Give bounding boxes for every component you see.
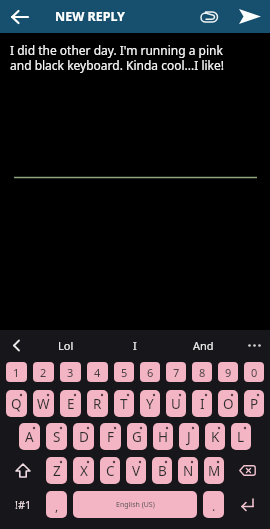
staticText: 0	[251, 365, 258, 380]
staticText: And	[193, 338, 214, 353]
button[interactable]: 9	[218, 362, 238, 382]
staticText: F	[107, 428, 115, 446]
staticText: T	[120, 395, 128, 413]
staticText: H	[158, 428, 169, 446]
button[interactable]: D	[73, 423, 94, 450]
button[interactable]: 6	[140, 362, 160, 382]
button[interactable]: C	[100, 457, 120, 484]
staticText: V	[132, 462, 141, 480]
staticText: A	[25, 428, 34, 446]
button[interactable]: 0	[244, 362, 264, 382]
button[interactable]: T	[114, 390, 134, 417]
button[interactable]	[227, 457, 267, 484]
staticText: I	[200, 395, 205, 413]
button[interactable]: Q	[6, 390, 27, 417]
staticText: D	[79, 428, 89, 446]
button[interactable]: 7	[166, 362, 186, 382]
button[interactable]: V	[126, 457, 146, 484]
button[interactable]: E	[60, 390, 81, 417]
button[interactable]: L	[231, 423, 251, 450]
button[interactable]: And	[178, 330, 228, 360]
button[interactable]: Z	[46, 457, 67, 484]
button[interactable]: K	[205, 423, 225, 450]
staticText: 2	[40, 365, 47, 380]
staticText: 1	[13, 365, 20, 380]
button[interactable]: A	[19, 423, 40, 450]
staticText: 6	[147, 365, 154, 380]
button[interactable]: I	[110, 330, 160, 360]
staticText: 5	[121, 365, 128, 380]
staticText: Q	[11, 395, 22, 413]
button[interactable]: J	[179, 423, 199, 450]
staticText: E	[67, 395, 75, 413]
button[interactable]: B	[152, 457, 172, 484]
button[interactable]: M	[204, 457, 224, 484]
staticText: Z	[53, 462, 61, 480]
staticText: M	[208, 462, 221, 480]
staticText: R	[93, 395, 102, 413]
staticText: L	[237, 428, 245, 446]
button[interactable]: 2	[33, 362, 54, 382]
staticText: N	[183, 462, 194, 480]
staticText: !#1	[15, 497, 32, 512]
button[interactable]: X	[73, 457, 94, 484]
button[interactable]: P	[244, 390, 264, 417]
staticText: 4	[94, 365, 101, 380]
button[interactable]	[192, 0, 226, 33]
staticText: English (US)	[116, 500, 155, 510]
staticText: Lol	[58, 338, 74, 353]
button[interactable]: 5	[114, 362, 134, 382]
button[interactable]: G	[127, 423, 147, 450]
staticText: .	[212, 498, 216, 514]
staticText: J	[187, 428, 191, 446]
staticText: U	[171, 395, 181, 413]
staticText: O	[223, 395, 234, 413]
button[interactable]: 8	[192, 362, 212, 382]
staticText: K	[211, 428, 220, 446]
button[interactable]: !#1	[3, 491, 43, 518]
button[interactable]: W	[33, 390, 54, 417]
button[interactable]: 1	[6, 362, 27, 382]
button[interactable]: Lol	[41, 330, 91, 360]
button[interactable]: F	[100, 423, 121, 450]
button[interactable]: 3	[60, 362, 81, 382]
staticText: S	[53, 428, 61, 446]
button[interactable]: .	[203, 491, 224, 518]
button[interactable]	[6, 333, 26, 357]
staticText: X	[80, 462, 88, 480]
button[interactable]: Y	[140, 390, 160, 417]
staticText: P	[250, 395, 259, 413]
staticText: I	[133, 338, 137, 353]
staticText: 7	[173, 365, 180, 380]
button[interactable]	[244, 333, 264, 357]
button[interactable]: R	[87, 390, 108, 417]
button[interactable]: 4	[87, 362, 108, 382]
staticText: 8	[199, 365, 206, 380]
staticText: ,	[55, 498, 59, 514]
button[interactable]	[227, 491, 267, 518]
button[interactable]: H	[153, 423, 173, 450]
staticText: W	[37, 395, 50, 413]
staticText: C	[106, 462, 115, 480]
staticText: I did the other day. I'm running a pink …	[10, 42, 224, 73]
button[interactable]	[0, 0, 40, 33]
staticText: G	[132, 428, 142, 446]
button[interactable]: ,	[46, 491, 67, 518]
staticText: B	[158, 462, 167, 480]
staticText: NEW REPLY	[55, 8, 125, 25]
staticText: 9	[225, 365, 232, 380]
button[interactable]: O	[218, 390, 238, 417]
button[interactable]: N	[178, 457, 198, 484]
button[interactable]: I	[192, 390, 212, 417]
staticText: 3	[67, 365, 74, 380]
button[interactable]: S	[46, 423, 67, 450]
button[interactable]	[3, 457, 43, 484]
button[interactable]: English (US)	[73, 491, 197, 518]
staticText: Y	[146, 395, 154, 413]
button[interactable]: U	[166, 390, 186, 417]
button[interactable]	[230, 0, 270, 33]
